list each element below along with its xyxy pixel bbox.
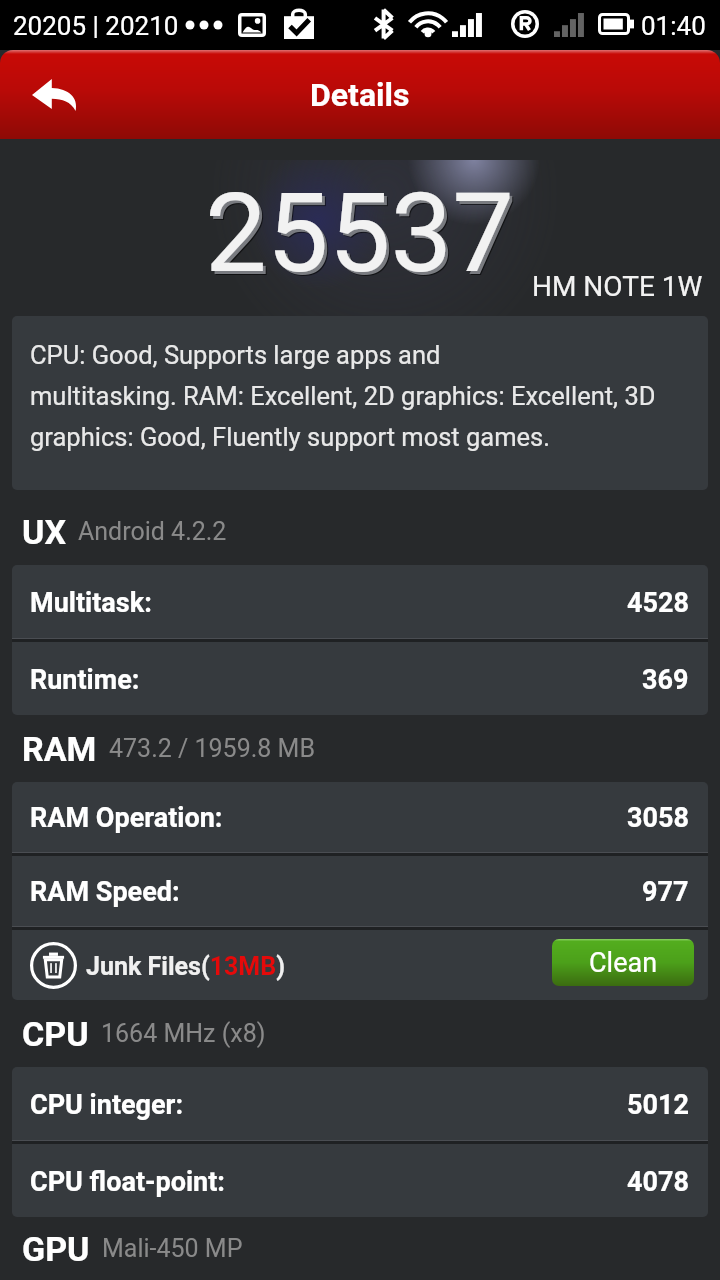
staticText: UX (22, 512, 66, 552)
staticText: 1664 MHz (x8) (101, 1019, 266, 1048)
staticText: Clean (589, 947, 658, 979)
staticText: 25537 (205, 169, 515, 298)
staticText: 25537 (208, 172, 518, 301)
button[interactable]: Back (6, 50, 102, 139)
staticText: 4528 (627, 587, 689, 619)
staticText: Junk Files(13MB) (86, 952, 286, 981)
staticText: 369 (642, 664, 689, 696)
staticText: 25537 (209, 173, 519, 302)
staticText: 5012 (627, 1089, 689, 1121)
staticText: CPU integer: (30, 1089, 184, 1121)
button[interactable]: Runtime: (12, 642, 708, 715)
staticText: graphics: Good, Fluently support most ga… (30, 422, 550, 452)
staticText: Android 4.2.2 (78, 517, 227, 546)
staticText: RAM Operation: (30, 802, 223, 834)
button[interactable]: CPU float-point: (12, 1144, 708, 1217)
staticText: RAM Speed: (30, 876, 180, 908)
staticText: Mali-450 MP (102, 1234, 243, 1263)
button[interactable]: RAM Operation: (12, 782, 708, 852)
staticText: Multitask: (30, 587, 152, 619)
staticText: 4078 (627, 1166, 689, 1198)
staticText: CPU (22, 1014, 89, 1054)
staticText: CPU: Good, Supports large apps and (30, 340, 441, 370)
staticText: HM NOTE 1W (532, 270, 703, 303)
staticText: Runtime: (30, 664, 140, 696)
staticText: 20205 | 20210 (13, 11, 179, 41)
staticText: 473.2 / 1959.8 MB (109, 734, 315, 763)
button[interactable]: Clean (552, 939, 694, 986)
staticText: CPU float-point: (30, 1166, 225, 1198)
staticText: Details (310, 76, 410, 114)
staticText: multitasking. RAM: Excellent, 2D graphic… (30, 381, 656, 411)
staticText: 3058 (627, 802, 689, 834)
button[interactable]: Multitask: (12, 565, 708, 638)
staticText: GPU (22, 1229, 90, 1269)
button[interactable]: CPU integer: (12, 1067, 708, 1140)
staticText: 01:40 (641, 11, 706, 41)
staticText: RAM (22, 729, 97, 769)
staticText: 977 (642, 876, 689, 908)
button[interactable]: RAM Speed: (12, 856, 708, 926)
